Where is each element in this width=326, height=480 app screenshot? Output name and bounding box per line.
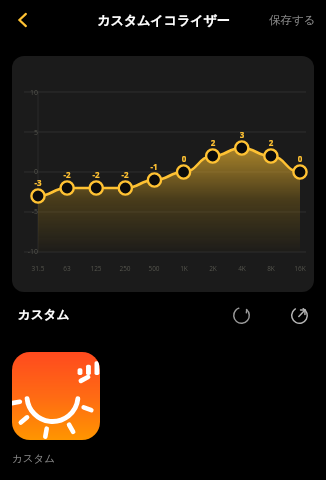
staticText: 0 xyxy=(18,167,38,177)
staticText: 63 xyxy=(56,264,78,273)
staticText: -2 xyxy=(58,169,76,180)
staticText: 2 xyxy=(262,137,280,148)
staticText: 3 xyxy=(233,129,251,140)
staticText: 5 xyxy=(18,128,38,138)
staticText: -1 xyxy=(145,161,163,172)
staticText: 500 xyxy=(143,264,165,273)
button[interactable]: Reset xyxy=(224,298,258,332)
staticText: カスタム xyxy=(18,307,70,323)
staticText: 1K xyxy=(173,264,195,273)
button[interactable]: Share xyxy=(282,298,316,332)
staticText: 16K xyxy=(289,264,311,273)
staticText: 4K xyxy=(231,264,253,273)
staticText: 250 xyxy=(114,264,136,273)
staticText: 125 xyxy=(85,264,107,273)
button[interactable]: 保存する xyxy=(259,7,326,33)
staticText: 31.5 xyxy=(27,264,49,273)
staticText: -10 xyxy=(18,247,38,257)
staticText: -2 xyxy=(116,169,134,180)
staticText: 0 xyxy=(175,153,193,164)
staticText: -3 xyxy=(29,177,47,188)
button[interactable]: カスタム preset xyxy=(12,352,100,440)
staticText: -2 xyxy=(87,169,105,180)
staticText: -5 xyxy=(18,207,38,217)
staticText: 8K xyxy=(260,264,282,273)
staticText: 0 xyxy=(291,153,309,164)
staticText: 保存する xyxy=(269,13,316,27)
staticText: 2K xyxy=(202,264,224,273)
staticText: 2 xyxy=(204,137,222,148)
button[interactable]: 10 xyxy=(12,56,314,292)
staticText: 10 xyxy=(18,88,38,98)
staticText: カスタム xyxy=(12,452,100,465)
staticText: カスタムイコライザー xyxy=(97,12,230,28)
button[interactable]: Back xyxy=(6,3,40,37)
